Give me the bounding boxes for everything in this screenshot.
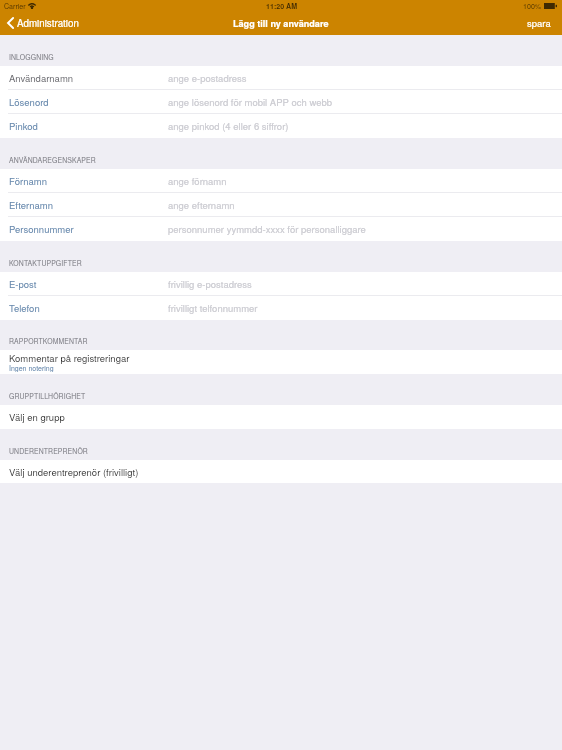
staticText: ange e-postadress (168, 71, 247, 85)
staticText: Användarnamn (9, 71, 74, 85)
staticText: Carrier (4, 1, 26, 11)
staticText: spara (527, 16, 551, 30)
staticText: Ingen notering (9, 363, 54, 372)
staticText: ANVÄNDAREGENSKAPER (9, 155, 96, 165)
staticText: 11:20 AM (266, 1, 298, 11)
button[interactable]: E-post (0, 272, 562, 296)
staticText: Välj en grupp (9, 410, 65, 424)
button[interactable]: Pinkod (0, 114, 562, 138)
button[interactable]: Administration (5, 13, 81, 33)
staticText: Personnummer (9, 222, 74, 236)
staticText: INLOGGNING (9, 52, 54, 62)
staticText: personnumer yymmdd-xxxx för personalligg… (168, 222, 366, 236)
staticText: Välj underentreprenör (frivilligt) (9, 465, 139, 479)
other: Battery 100 percent (544, 3, 557, 9)
staticText: ange förnamn (168, 174, 227, 188)
button[interactable]: Personnummer (0, 217, 562, 241)
button[interactable]: Välj en grupp (0, 405, 562, 429)
staticText: Lägg till ny användare (233, 17, 329, 30)
button[interactable]: Lösenord (0, 90, 562, 114)
staticText: frivillig e-postadress (168, 277, 252, 291)
staticText: Administration (17, 16, 79, 30)
staticText: ange pinkod (4 eller 6 siffror) (168, 119, 289, 133)
staticText: Pinkod (9, 119, 38, 133)
staticText: GRUPPTILLHÖRIGHET (9, 391, 86, 401)
staticText: Telefon (9, 301, 40, 315)
button[interactable]: Efternamn (0, 193, 562, 217)
button[interactable]: spara (525, 13, 553, 33)
button[interactable]: Förnamn (0, 169, 562, 193)
other: Wi-Fi signal (28, 3, 36, 9)
staticText: 100% (523, 1, 542, 11)
staticText: E-post (9, 277, 37, 291)
staticText: RAPPORTKOMMENTAR (9, 336, 88, 346)
staticText: ange lösenord för mobil APP och webb (168, 95, 333, 109)
button[interactable]: Välj underentreprenör (frivilligt) (0, 460, 562, 483)
staticText: ange efternamn (168, 198, 235, 212)
staticText: UNDERENTREPRENÖR (9, 446, 88, 456)
staticText: KONTAKTUPPGIFTER (9, 258, 82, 268)
button[interactable]: Telefon (0, 296, 562, 320)
staticText: Efternamn (9, 198, 53, 212)
staticText: frivilligt telfonnummer (168, 301, 258, 315)
staticText: Kommentar på registreringar (9, 351, 130, 365)
button[interactable]: Kommentar på registreringar (0, 350, 562, 374)
staticText: Lösenord (9, 95, 49, 109)
button[interactable]: Användarnamn (0, 66, 562, 90)
staticText: Förnamn (9, 174, 47, 188)
